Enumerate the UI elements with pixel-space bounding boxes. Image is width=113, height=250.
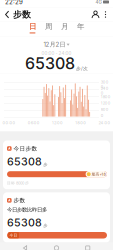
staticText: 22:29 — [5, 0, 23, 6]
staticText: 4G — [95, 0, 101, 5]
staticText: 65308 — [25, 54, 75, 73]
button[interactable]: Back — [19, 242, 31, 250]
staticText: 日 — [29, 22, 36, 31]
staticText: 12:00 — [52, 120, 63, 125]
staticText: 06:00 — [28, 120, 40, 125]
button[interactable]: Back — [2, 7, 13, 21]
staticText: 今日步数比昨日多 — [7, 206, 47, 213]
button[interactable]: Recents — [82, 242, 94, 250]
staticText: 600 — [101, 107, 109, 112]
button[interactable]: More options — [101, 7, 110, 21]
staticText: 00:00 — [2, 120, 15, 125]
button[interactable]: 年 — [73, 21, 88, 36]
staticText: 1200 — [101, 101, 111, 105]
staticText: 步 — [43, 223, 47, 228]
staticText: 65308 — [7, 216, 42, 229]
button[interactable]: 月 — [57, 21, 72, 36]
staticText: 周 — [45, 22, 52, 31]
button[interactable]: Friends — [90, 7, 101, 21]
staticText: 1800 — [101, 94, 111, 99]
staticText: 2400 — [101, 86, 109, 96]
button[interactable]: 步数 — [0, 192, 113, 242]
staticText: 最高+18 — [91, 172, 105, 177]
button[interactable]: 日 — [25, 21, 40, 36]
button[interactable]: Home — [50, 242, 62, 250]
button[interactable]: 今日步数 — [0, 140, 113, 189]
staticText: 3000 — [101, 80, 109, 89]
staticText: 24:00 — [98, 120, 110, 125]
staticText: 65308 — [7, 155, 42, 168]
staticText: 00:00 - 24:00 — [41, 50, 71, 56]
button[interactable]: 12月2日 — [43, 41, 70, 47]
staticText: 18:00 — [75, 120, 86, 125]
staticText: 今日步数 — [13, 145, 37, 152]
staticText: 今日 — [10, 233, 18, 238]
staticText: 12月2日 — [43, 41, 65, 48]
staticText: 步/次 — [76, 65, 88, 71]
staticText: 目标 8000 步 — [7, 180, 29, 185]
staticText: 0 — [101, 113, 104, 118]
staticText: 月 — [61, 22, 68, 31]
staticText: 年 — [77, 22, 84, 31]
button[interactable]: 周 — [41, 21, 56, 36]
staticText: 步数 — [13, 9, 31, 20]
staticText: 步 — [43, 162, 47, 167]
staticText: 步数 — [13, 197, 25, 204]
